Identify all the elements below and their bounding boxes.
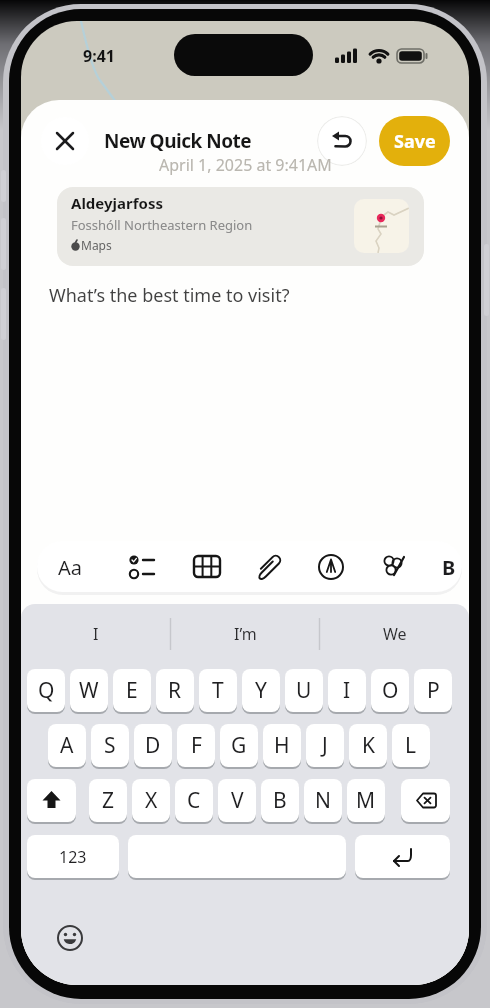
staticText: X	[145, 786, 158, 815]
staticText: S	[104, 731, 116, 760]
staticText: T	[212, 676, 224, 705]
button[interactable]: L	[392, 724, 430, 767]
button[interactable]: I	[328, 669, 366, 712]
button[interactable]: F	[177, 724, 215, 767]
staticText: C	[187, 786, 201, 815]
button[interactable]: X	[132, 779, 170, 822]
staticText: G	[231, 731, 247, 760]
staticText: 123	[59, 846, 87, 868]
button[interactable]	[126, 549, 156, 585]
staticText: Y	[255, 676, 267, 705]
button[interactable]: M	[347, 779, 385, 822]
button[interactable]	[317, 116, 367, 166]
button[interactable]: G	[220, 724, 258, 767]
staticText: D	[145, 731, 161, 760]
button[interactable]	[192, 553, 222, 581]
button[interactable]: Aa	[47, 552, 93, 582]
button[interactable]: I’m	[170, 620, 320, 648]
staticText: P	[427, 676, 440, 705]
button[interactable]: S	[91, 724, 129, 767]
staticText: M	[356, 786, 376, 815]
button[interactable]: B	[261, 779, 299, 822]
button[interactable]: Y	[242, 669, 280, 712]
staticText: W	[79, 676, 99, 705]
staticText: Maps	[81, 237, 112, 253]
button[interactable]	[254, 551, 284, 583]
staticText: We	[383, 623, 407, 645]
button[interactable]: I	[21, 620, 170, 648]
staticText: K	[362, 731, 375, 760]
button[interactable]: V	[218, 779, 256, 822]
button[interactable]: O	[371, 669, 409, 712]
staticText: R	[168, 676, 182, 705]
button[interactable]: B	[435, 552, 462, 582]
button[interactable]	[128, 835, 346, 878]
staticText: I	[93, 623, 99, 645]
button[interactable]: Aldeyjarfoss	[57, 187, 424, 266]
button[interactable]: P	[414, 669, 452, 712]
button[interactable]	[355, 835, 450, 878]
button[interactable]	[316, 552, 346, 582]
staticText: O	[382, 676, 399, 705]
staticText: New Quick Note	[104, 128, 252, 154]
staticText: A	[60, 731, 74, 760]
staticText: Z	[102, 786, 115, 815]
button[interactable]: 123	[27, 835, 119, 878]
button[interactable]: J	[306, 724, 344, 767]
staticText: I’m	[234, 623, 257, 645]
button[interactable]: R	[156, 669, 194, 712]
staticText: Aldeyjarfoss	[71, 193, 163, 213]
button[interactable]: D	[134, 724, 172, 767]
staticText: Fosshóll Northeastern Region	[71, 216, 253, 234]
staticText: I	[343, 676, 351, 705]
staticText: Save	[394, 129, 436, 154]
staticText: H	[274, 731, 290, 760]
staticText: E	[126, 676, 138, 705]
staticText: B	[442, 554, 456, 581]
button[interactable]: N	[304, 779, 342, 822]
button[interactable]	[401, 779, 450, 822]
button[interactable]: A	[48, 724, 86, 767]
staticText: Q	[38, 676, 55, 705]
staticText: N	[315, 786, 331, 815]
button[interactable]: W	[70, 669, 108, 712]
button[interactable]	[56, 924, 84, 952]
button[interactable]	[27, 779, 76, 822]
button[interactable]: We	[320, 620, 469, 648]
staticText: Aa	[58, 554, 82, 581]
button[interactable]: E	[113, 669, 151, 712]
button[interactable]	[379, 551, 411, 583]
staticText: U	[296, 676, 312, 705]
button[interactable]: C	[175, 779, 213, 822]
button[interactable]: Save	[379, 116, 450, 166]
staticText: F	[191, 731, 202, 760]
button[interactable]	[41, 117, 89, 165]
button[interactable]: K	[349, 724, 387, 767]
button[interactable]: U	[285, 669, 323, 712]
button[interactable]: Z	[89, 779, 127, 822]
staticText: What’s the best time to visit?	[49, 283, 290, 308]
button[interactable]: Q	[27, 669, 65, 712]
staticText: April 1, 2025 at 9:41AM	[159, 154, 332, 176]
staticText: 9:41	[83, 45, 115, 67]
staticText: B	[273, 786, 287, 815]
button[interactable]: T	[199, 669, 237, 712]
staticText: V	[231, 786, 244, 815]
staticText: J	[322, 731, 328, 760]
staticText: L	[405, 731, 417, 760]
button[interactable]: H	[263, 724, 301, 767]
